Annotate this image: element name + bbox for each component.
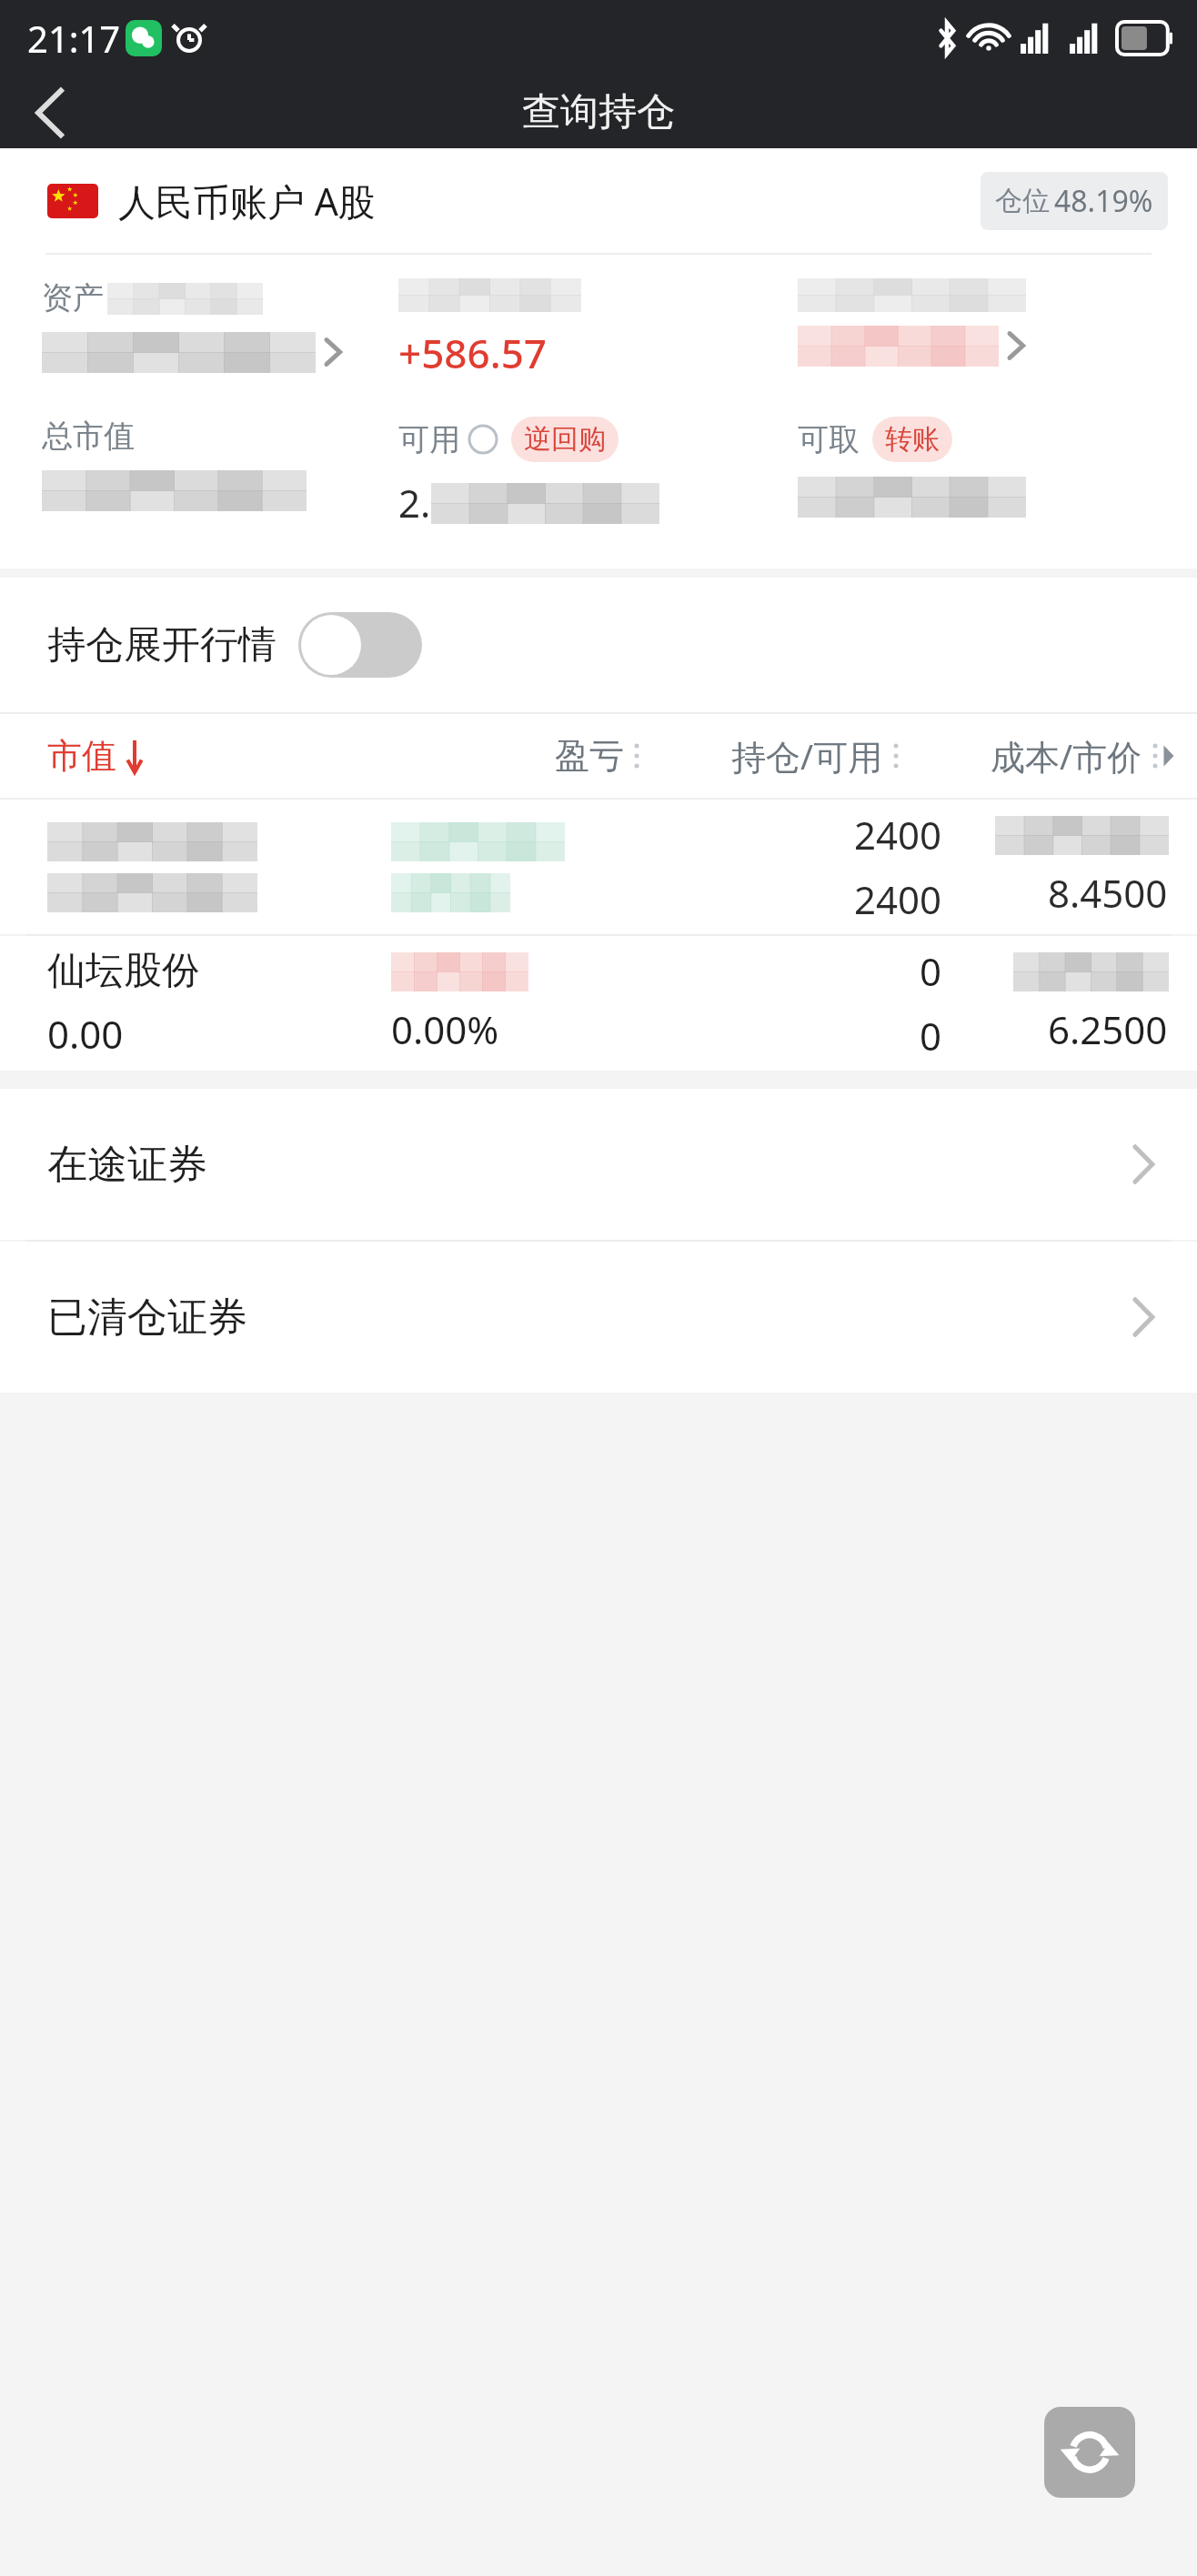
staticText: 仙坛股份	[47, 947, 200, 995]
staticText: 2400	[854, 873, 942, 925]
staticText: 0	[920, 1010, 942, 1062]
staticText: 仓位	[995, 184, 1050, 218]
button[interactable]: 可用	[398, 417, 798, 528]
staticText: 48.19%	[1054, 181, 1153, 221]
button[interactable]: 总市值	[42, 417, 398, 510]
button[interactable]: 已清仓证券	[0, 1242, 1197, 1393]
staticText: 成本/市价	[991, 732, 1142, 780]
staticText: 总市值	[42, 417, 135, 456]
button[interactable]: 人民币账户 A股	[0, 148, 1197, 253]
staticText: 人民币账户 A股	[118, 176, 376, 226]
staticText: 已清仓证券	[47, 1293, 247, 1343]
staticText: 资产	[42, 278, 104, 317]
button[interactable]: 2400	[0, 800, 1197, 934]
staticText: 查询持仓	[522, 88, 675, 136]
staticText: 0.00	[47, 1008, 124, 1060]
button[interactable]	[798, 278, 1197, 366]
staticText: +586.57	[398, 326, 547, 380]
staticText: 盈亏	[555, 734, 624, 778]
button[interactable]: 在途证券	[0, 1089, 1197, 1240]
button[interactable]: +586.57	[398, 278, 798, 380]
staticText: 2400	[854, 809, 942, 860]
staticText: 0	[920, 945, 942, 997]
button[interactable]: 仙坛股份	[0, 936, 1197, 1071]
button[interactable]: 市值	[47, 734, 146, 778]
staticText: 持仓/可用	[731, 732, 883, 780]
staticText: 逆回购	[524, 422, 606, 457]
button[interactable]: 持仓/可用	[640, 732, 900, 780]
button[interactable]: 盈亏	[458, 734, 640, 778]
staticText: 在途证券	[47, 1140, 207, 1190]
staticText: 可用	[398, 420, 460, 459]
button[interactable]: Back	[0, 76, 100, 148]
staticText: 持仓展开行情	[47, 621, 277, 669]
button[interactable]: 可取	[798, 417, 1197, 517]
button[interactable]: 仓位	[995, 181, 1153, 221]
staticText: 2.	[398, 477, 431, 528]
button[interactable]: 资产	[42, 278, 398, 372]
staticText: 可取	[798, 420, 860, 459]
staticText: 0.00%	[391, 1003, 499, 1055]
staticText: 6.2500	[1048, 1003, 1168, 1055]
button[interactable]: 持仓展开行情	[47, 612, 422, 678]
staticText: 转账	[885, 422, 940, 457]
staticText: 21:17	[27, 14, 121, 63]
button[interactable]: Refresh	[1044, 2407, 1135, 2498]
staticText: 8.4500	[1048, 867, 1168, 919]
button[interactable]: 成本/市价	[900, 732, 1159, 780]
button[interactable]: 转账	[885, 422, 940, 457]
staticText: 市值	[47, 734, 116, 778]
button[interactable]: 逆回购	[524, 422, 606, 457]
